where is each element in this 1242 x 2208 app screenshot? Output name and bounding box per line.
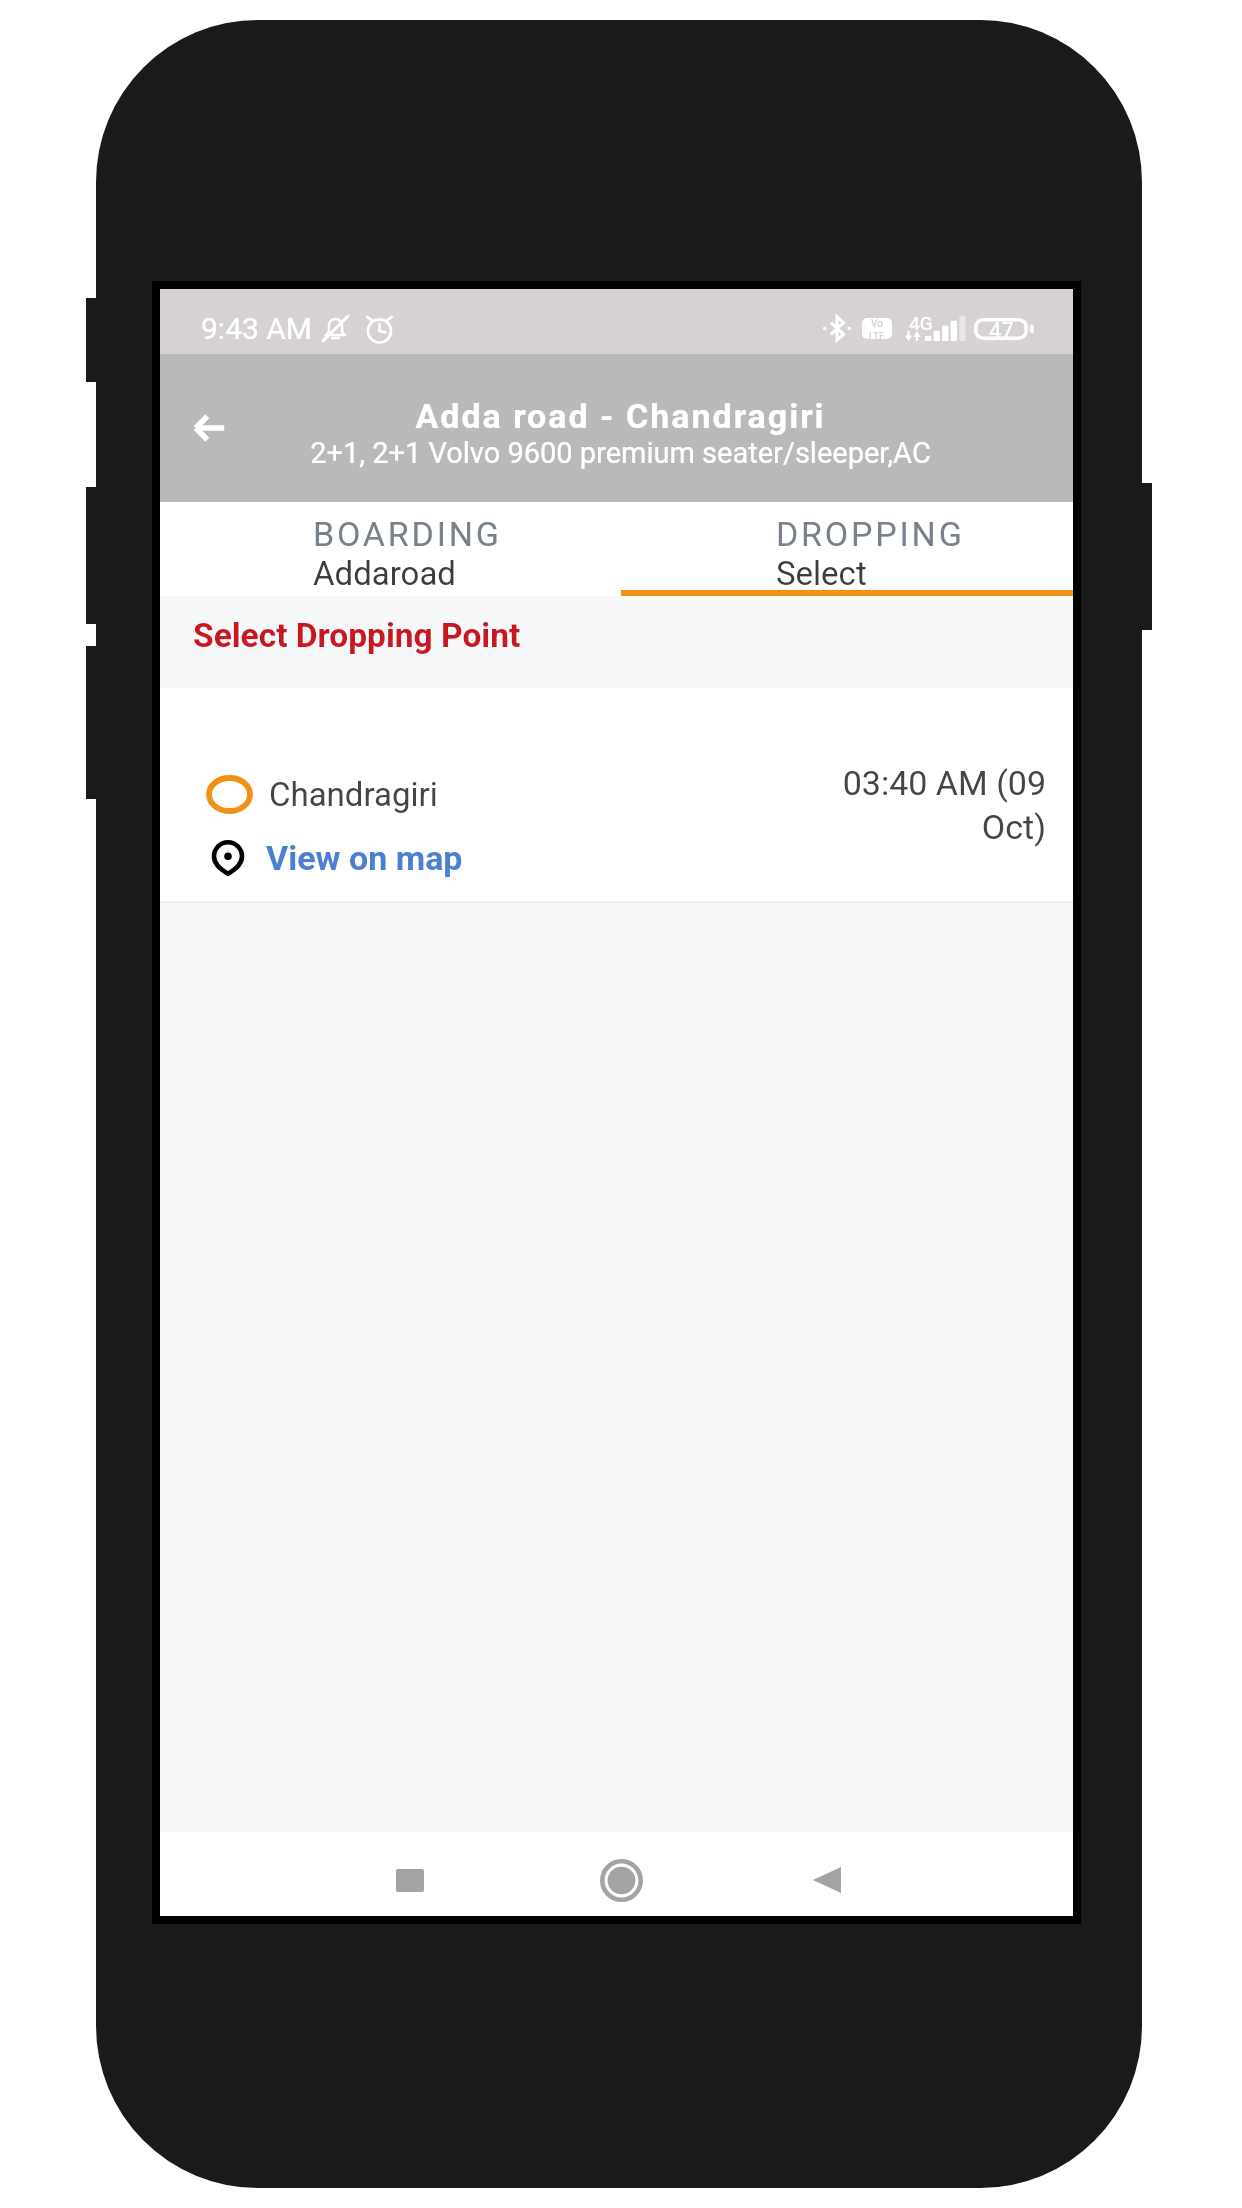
- staticText: 2+1, 2+1 Volvo 9600 premium seater/sleep…: [310, 436, 931, 470]
- staticText: 4G: [909, 312, 933, 334]
- staticText: Select Dropping Point: [193, 616, 521, 655]
- staticText: DROPPING: [776, 514, 965, 554]
- staticText: 03:40 AM (09 Oct): [836, 763, 1046, 847]
- staticText: Addaroad: [313, 554, 456, 593]
- staticText: View on map: [266, 838, 463, 878]
- button[interactable]: DROPPING: [616, 502, 1073, 596]
- staticText: Select: [776, 554, 867, 593]
- button[interactable]: Home: [579, 1838, 663, 1922]
- staticText: Chandragiri: [269, 775, 438, 814]
- button[interactable]: Chandragiri: [160, 688, 1073, 903]
- button[interactable]: Recents: [368, 1838, 452, 1922]
- button[interactable]: View on map: [206, 838, 463, 878]
- button[interactable]: Back: [785, 1838, 869, 1922]
- staticText: 9:43 AM: [201, 311, 313, 346]
- button[interactable]: BOARDING: [160, 502, 616, 596]
- staticText: 47: [989, 318, 1014, 340]
- staticText: LTE: [869, 331, 885, 339]
- staticText: BOARDING: [313, 514, 502, 554]
- staticText: Vo: [871, 318, 883, 330]
- staticText: Adda road - Chandragiri: [415, 396, 826, 436]
- button[interactable]: Back: [171, 389, 249, 467]
